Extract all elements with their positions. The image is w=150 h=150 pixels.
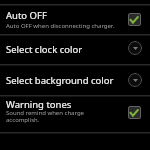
button[interactable]: Select clock color — [0, 36, 150, 64]
staticText: accomplish. — [6, 116, 40, 124]
staticText: Auto OFF — [6, 9, 47, 22]
staticText: Select background color — [6, 74, 114, 87]
staticText: Select clock color — [6, 43, 83, 56]
button[interactable]: Expand — [128, 73, 142, 87]
button[interactable]: Checked — [128, 13, 141, 26]
staticText: Auto OFF when disconnecting charger. — [6, 22, 114, 30]
button[interactable]: Auto OFF — [0, 6, 150, 34]
staticText: Sound remind when charge — [6, 109, 84, 117]
button[interactable]: Select background color — [0, 66, 150, 95]
button[interactable]: Warning tones — [0, 97, 150, 132]
staticText: Warning tones — [6, 98, 72, 111]
button[interactable]: Expand — [128, 41, 142, 55]
button[interactable]: Checked — [128, 106, 141, 119]
